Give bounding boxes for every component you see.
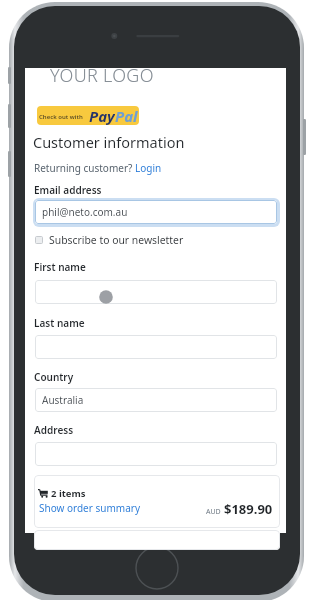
button[interactable]: Login	[135, 161, 162, 175]
staticText: phil@neto.com.au	[42, 205, 128, 219]
staticText: Subscribe to our newsletter	[49, 233, 184, 247]
button[interactable]	[35, 442, 277, 466]
button[interactable]: Subscribe to our newsletter	[35, 233, 184, 247]
button[interactable]: 2 items	[34, 475, 280, 528]
staticText: Email address	[34, 183, 102, 197]
button[interactable]	[35, 280, 277, 304]
staticText: Australia	[42, 393, 84, 407]
staticText: 2 items	[51, 487, 86, 500]
staticText: Last name	[34, 316, 85, 330]
staticText: Address	[34, 423, 74, 437]
staticText: Pal	[115, 106, 138, 125]
staticText: Check out with	[39, 113, 83, 121]
button[interactable]	[35, 335, 277, 359]
button[interactable]: Australia	[35, 388, 277, 412]
staticText: Country	[34, 370, 74, 384]
staticText: AUD	[206, 507, 221, 517]
button[interactable]: Show order summary	[39, 501, 140, 515]
staticText: Login	[135, 161, 162, 175]
staticText: Customer information	[33, 132, 185, 152]
staticText: YOUR LOGO	[50, 63, 154, 88]
staticText: Show order summary	[39, 501, 140, 515]
button[interactable]: Check out with PayPal	[37, 106, 139, 125]
staticText: Pay	[89, 106, 115, 125]
staticText: Returning customer?	[34, 161, 135, 175]
staticText: $189.90	[224, 500, 273, 518]
staticText: First name	[34, 260, 86, 274]
button[interactable]: phil@neto.com.au	[35, 200, 277, 224]
